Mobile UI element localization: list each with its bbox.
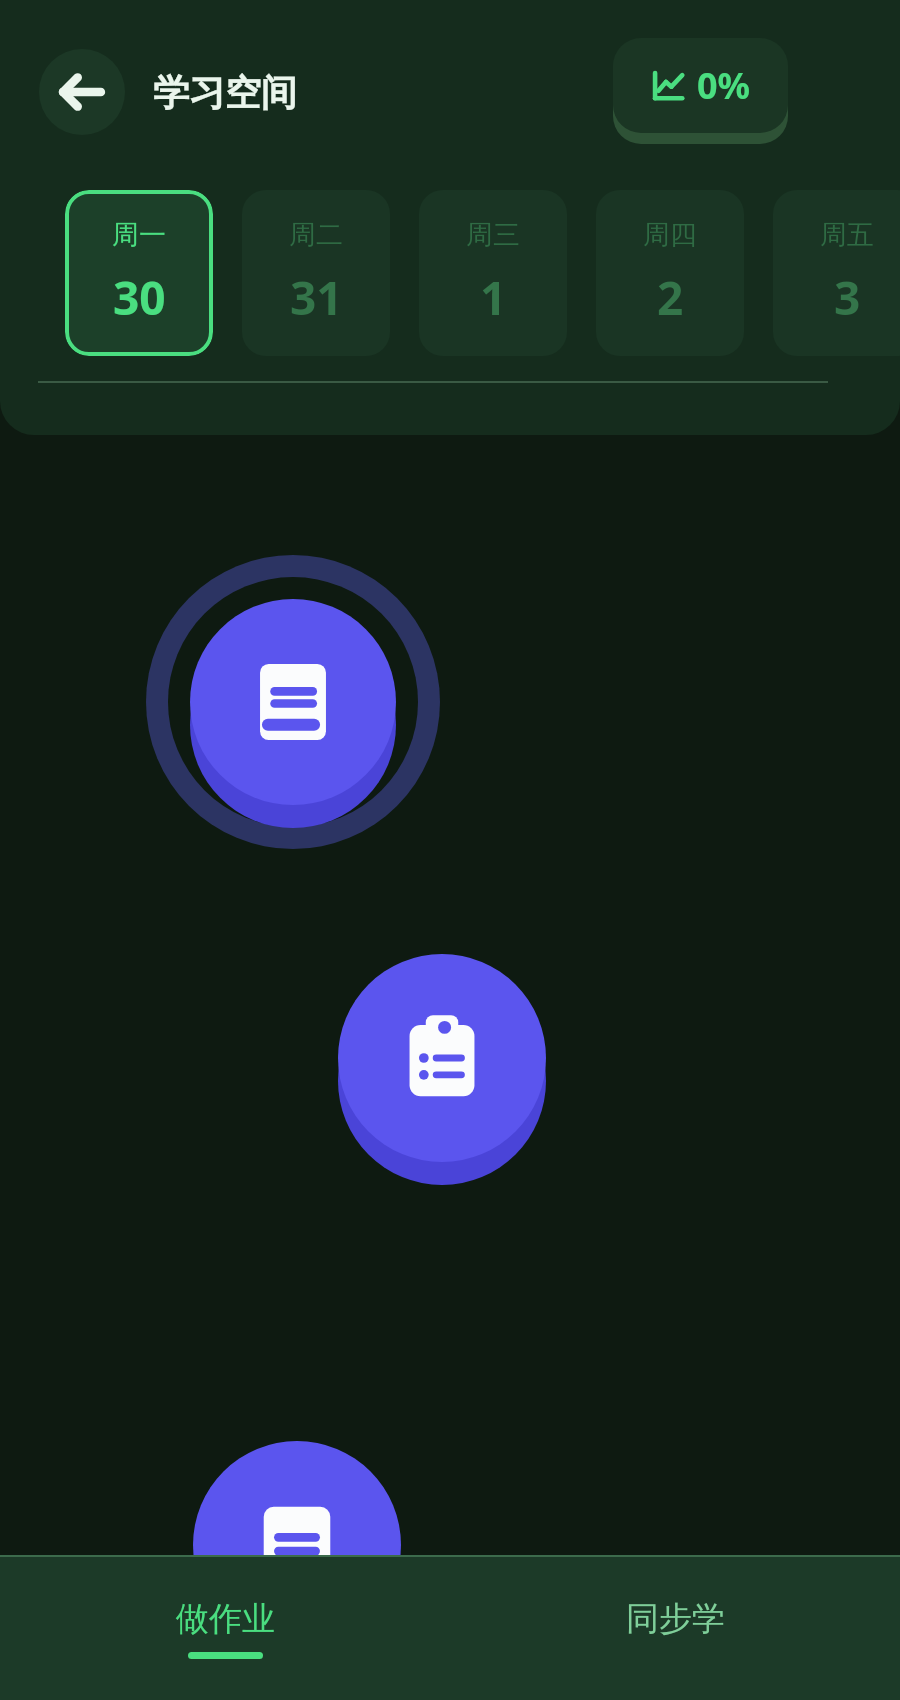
staticText: 学习空间: [153, 70, 297, 115]
button[interactable]: 周四: [596, 190, 744, 356]
button[interactable]: 同步学: [450, 1557, 900, 1700]
staticText: 周一: [112, 218, 166, 252]
staticText: 周五: [820, 218, 874, 252]
button[interactable]: 周二: [242, 190, 390, 356]
button[interactable]: 周一: [65, 190, 213, 356]
staticText: 30: [113, 266, 166, 329]
staticText: 0%: [697, 61, 751, 110]
button[interactable]: 做作业: [0, 1557, 450, 1700]
staticText: 做作业: [176, 1598, 275, 1640]
button[interactable]: Back: [39, 49, 125, 135]
staticText: 周二: [289, 218, 343, 252]
staticText: 31: [290, 266, 343, 329]
staticText: 同步学: [626, 1598, 725, 1640]
button[interactable]: 周五: [773, 190, 900, 356]
button[interactable]: Reading lesson: [146, 555, 440, 849]
button[interactable]: 周三: [419, 190, 567, 356]
button[interactable]: Homework list: [326, 942, 558, 1174]
staticText: 1: [480, 266, 507, 329]
staticText: 2: [657, 266, 684, 329]
button[interactable]: Notes: [181, 1429, 413, 1661]
staticText: 3: [834, 266, 861, 329]
staticText: 周四: [643, 218, 697, 252]
button[interactable]: 0%: [613, 38, 788, 133]
staticText: 周三: [466, 218, 520, 252]
